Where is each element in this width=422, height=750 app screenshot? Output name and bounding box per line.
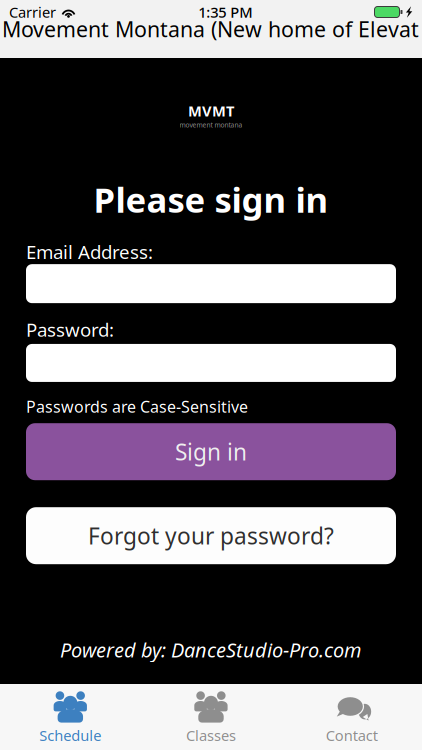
staticText: Passwords are Case-Sensitive	[26, 396, 248, 417]
staticText: 1:35 PM	[198, 2, 252, 22]
staticText: Please sign in	[93, 176, 328, 222]
button[interactable]: Classes	[141, 684, 281, 750]
staticText: Email Address:	[26, 239, 153, 264]
button[interactable]: Forgot your password?	[26, 507, 396, 564]
staticText: Contact	[326, 725, 378, 745]
staticText: Schedule	[39, 725, 101, 745]
button[interactable]: Sign in	[26, 423, 396, 480]
staticText: Forgot your password?	[88, 521, 334, 551]
staticText: Powered by: DanceStudio-Pro.com	[60, 636, 362, 663]
staticText: Password:	[26, 317, 114, 342]
staticText: Carrier	[9, 2, 56, 22]
button[interactable]: Contact	[281, 684, 422, 750]
staticText: movement montana	[179, 120, 242, 129]
staticText: Sign in	[175, 437, 247, 467]
staticText: MVMT	[188, 101, 234, 120]
staticText: Classes	[186, 725, 236, 745]
staticText: Movement Montana (New home of Elevat	[2, 15, 419, 43]
button[interactable]: Schedule	[0, 684, 141, 750]
